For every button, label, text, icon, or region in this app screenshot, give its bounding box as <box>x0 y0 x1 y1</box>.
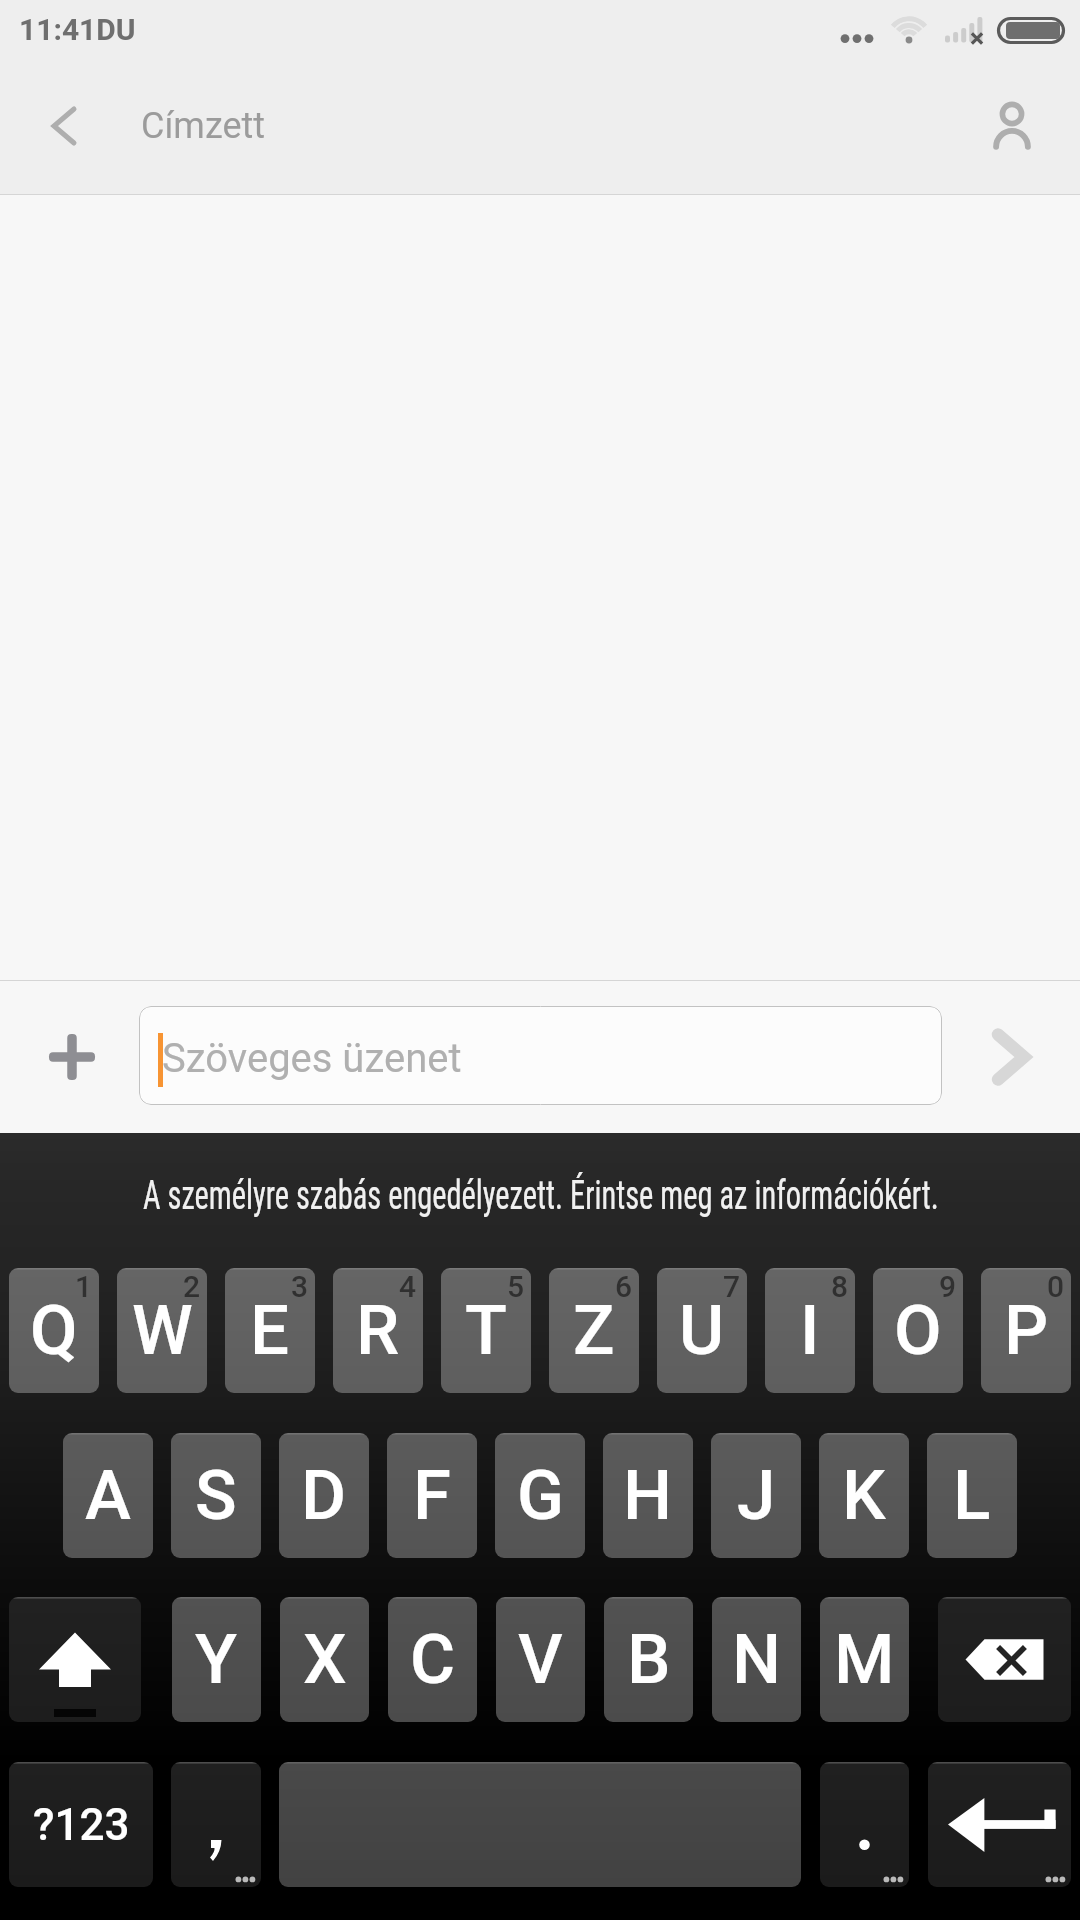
button[interactable]: O <box>873 1268 963 1393</box>
button[interactable]: S <box>171 1433 261 1558</box>
button[interactable]: M <box>820 1597 909 1722</box>
button[interactable]: Symbols <box>9 1762 153 1887</box>
button[interactable]: Comma <box>171 1762 261 1887</box>
staticText: 1 <box>75 1269 93 1304</box>
staticText: ?123 <box>33 1799 130 1851</box>
staticText: L <box>953 1455 991 1536</box>
button[interactable]: Y <box>172 1597 261 1722</box>
staticText: 5 <box>507 1269 525 1304</box>
staticText: R <box>356 1290 400 1371</box>
staticText: Címzett <box>141 105 266 147</box>
staticText: U <box>679 1290 725 1371</box>
button[interactable]: A <box>63 1433 153 1558</box>
button[interactable]: Space <box>279 1762 801 1887</box>
button[interactable]: R <box>333 1268 423 1393</box>
staticText: 3 <box>291 1269 309 1304</box>
button[interactable]: Szöveges üzenet <box>139 1006 942 1105</box>
button[interactable]: C <box>388 1597 477 1722</box>
staticText: 2 <box>183 1269 201 1304</box>
button[interactable]: Back <box>0 70 118 194</box>
button[interactable]: J <box>711 1433 801 1558</box>
staticText: Q <box>30 1290 78 1371</box>
button[interactable]: Add attachment <box>0 981 139 1133</box>
staticText: Y <box>195 1619 238 1700</box>
button[interactable]: Shift <box>9 1597 141 1722</box>
button[interactable]: Enter <box>928 1762 1071 1887</box>
staticText: I <box>800 1290 820 1371</box>
staticText: 7 <box>723 1269 741 1304</box>
staticText: O <box>894 1290 942 1371</box>
button[interactable]: I <box>765 1268 855 1393</box>
staticText: T <box>465 1290 507 1371</box>
button[interactable]: E <box>225 1268 315 1393</box>
staticText: 6 <box>615 1269 633 1304</box>
staticText: N <box>732 1619 782 1700</box>
button[interactable]: B <box>604 1597 693 1722</box>
button[interactable]: U <box>657 1268 747 1393</box>
button[interactable]: H <box>603 1433 693 1558</box>
staticText: V <box>518 1619 563 1700</box>
staticText: 0 <box>1047 1269 1065 1304</box>
staticText: E <box>250 1290 290 1371</box>
button[interactable]: P <box>981 1268 1071 1393</box>
button[interactable]: Period <box>820 1762 909 1887</box>
staticText: M <box>834 1619 895 1700</box>
button[interactable]: Q <box>9 1268 99 1393</box>
button[interactable]: X <box>280 1597 369 1722</box>
staticText: Z <box>573 1290 615 1371</box>
button[interactable]: T <box>441 1268 531 1393</box>
staticText: C <box>410 1619 456 1700</box>
staticText: 11:41DU <box>19 12 136 47</box>
button[interactable]: G <box>495 1433 585 1558</box>
staticText: D <box>301 1455 347 1536</box>
staticText: G <box>517 1455 564 1536</box>
staticText: K <box>842 1455 886 1536</box>
staticText: B <box>627 1619 671 1700</box>
button[interactable]: V <box>496 1597 585 1722</box>
button[interactable]: L <box>927 1433 1017 1558</box>
staticText: A <box>85 1455 131 1536</box>
staticText: 9 <box>939 1269 957 1304</box>
staticText: S <box>195 1455 237 1536</box>
button[interactable]: Z <box>549 1268 639 1393</box>
staticText: F <box>413 1455 451 1536</box>
staticText: J <box>737 1455 776 1536</box>
staticText: X <box>303 1619 347 1700</box>
staticText: Szöveges üzenet <box>162 1035 462 1082</box>
button[interactable]: A személyre szabás engedélyezett. Érints… <box>143 1172 939 1219</box>
button[interactable]: N <box>712 1597 801 1722</box>
button[interactable]: Send <box>942 981 1080 1133</box>
button[interactable]: D <box>279 1433 369 1558</box>
staticText: W <box>132 1290 193 1371</box>
button[interactable]: F <box>387 1433 477 1558</box>
button[interactable]: Backspace <box>938 1597 1071 1722</box>
button[interactable]: W <box>117 1268 207 1393</box>
staticText: 4 <box>399 1269 417 1304</box>
button[interactable]: K <box>819 1433 909 1558</box>
staticText: P <box>1004 1290 1049 1371</box>
staticText: H <box>623 1455 673 1536</box>
button[interactable]: Contacts <box>962 70 1080 194</box>
staticText: 8 <box>831 1269 849 1304</box>
